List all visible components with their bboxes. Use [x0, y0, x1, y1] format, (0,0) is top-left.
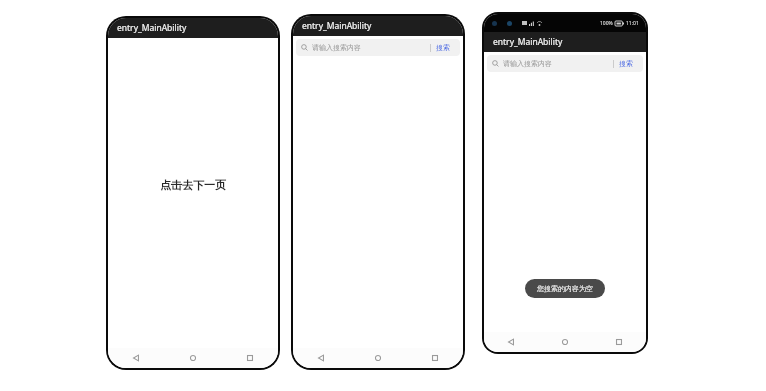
button[interactable]: Back: [484, 332, 538, 352]
button[interactable]: 点击去下一页: [154, 174, 232, 196]
staticText: 点击去下一页: [160, 178, 226, 192]
button[interactable]: Back: [293, 348, 349, 368]
button[interactable]: 搜索: [614, 58, 638, 69]
other: Search: [492, 60, 499, 67]
staticText: 请输入搜索内容: [312, 43, 361, 52]
button[interactable]: entry_MainAbility: [108, 18, 278, 38]
button[interactable]: Recents: [221, 348, 278, 368]
button[interactable]: entry_MainAbility: [293, 16, 463, 36]
staticText: 您搜索的内容为空: [537, 284, 593, 293]
staticText: 搜索: [436, 43, 450, 52]
staticText: 请输入搜索内容: [503, 59, 552, 68]
other: Search: [301, 44, 308, 51]
button[interactable]: entry_MainAbility: [484, 32, 646, 52]
staticText: 100%: [600, 20, 613, 27]
staticText: 搜索: [619, 59, 633, 68]
button[interactable]: 您搜索的内容为空: [525, 279, 605, 298]
button[interactable]: Recents: [406, 348, 463, 368]
button[interactable]: Recents: [592, 332, 646, 352]
staticText: entry_MainAbility: [493, 36, 563, 48]
button[interactable]: Home: [164, 348, 221, 368]
button[interactable]: Search: [296, 39, 460, 56]
staticText: 11:01: [626, 20, 639, 27]
button[interactable]: Home: [538, 332, 592, 352]
staticText: entry_MainAbility: [302, 20, 372, 32]
button[interactable]: Search: [487, 55, 643, 72]
button[interactable]: Back: [108, 348, 164, 368]
button[interactable]: 搜索: [431, 42, 455, 53]
staticText: entry_MainAbility: [117, 22, 187, 34]
button[interactable]: Home: [349, 348, 406, 368]
